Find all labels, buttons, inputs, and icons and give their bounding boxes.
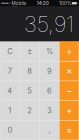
staticText: ÷ [66,46,72,57]
staticText: 5 [27,86,32,95]
button[interactable]: 0 [0,121,39,140]
button[interactable]: % [40,42,59,61]
staticText: 6 [47,86,52,95]
button[interactable]: 5 [20,81,39,100]
button[interactable]: C [0,42,19,61]
button[interactable]: 4 [0,81,19,100]
button[interactable]: = [59,121,79,140]
button[interactable]: ÷ [59,42,79,61]
staticText: C [7,47,12,56]
staticText: − [66,85,72,96]
button[interactable]: 1 [0,101,19,120]
button[interactable]: + [59,101,79,120]
button[interactable]: 9 [40,61,59,81]
button[interactable]: 6 [40,81,59,100]
staticText: 2 [27,106,32,115]
button[interactable]: ± [20,42,39,61]
staticText: T-Mobile CZ [12,0,27,11]
staticText: 8 [27,66,32,75]
staticText: 100% [59,0,71,6]
staticText: 7 [8,66,12,75]
button[interactable]: 7 [0,61,19,81]
staticText: 3 [47,106,52,115]
staticText: + [66,105,72,116]
staticText: , [48,126,50,135]
staticText: 9 [47,66,52,75]
staticText: = [66,125,72,136]
staticText: ± [27,47,32,56]
staticText: 1 [8,106,11,115]
button[interactable]: 2 [20,101,39,120]
button[interactable]: , [40,121,59,140]
staticText: × [66,66,72,77]
button[interactable]: × [59,61,79,81]
button[interactable]: − [59,81,79,100]
button[interactable]: 3 [40,101,59,120]
button[interactable]: 8 [20,61,39,81]
staticText: 14:20 [37,0,49,6]
staticText: 35,91 [24,11,74,37]
staticText: % [46,47,53,56]
staticText: 0 [8,126,13,135]
staticText: 4 [7,86,12,95]
